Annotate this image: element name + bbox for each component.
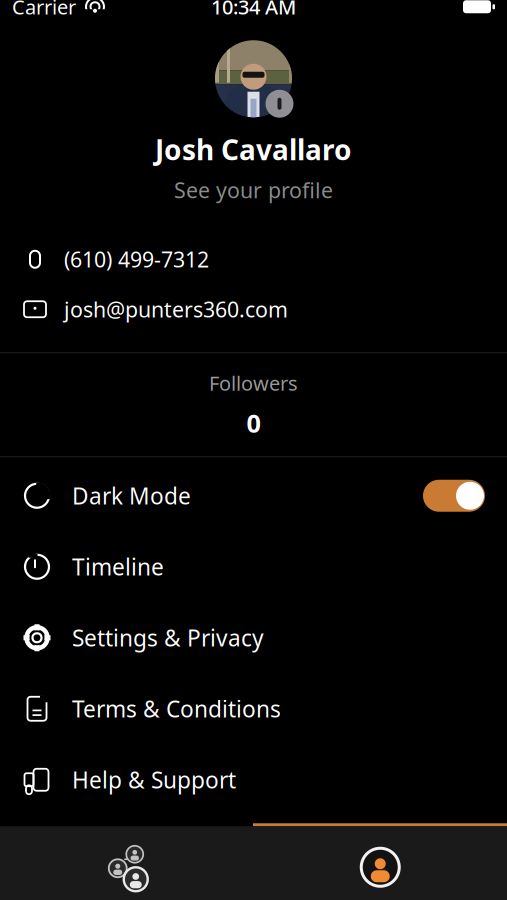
button[interactable]: Network [0,826,253,900]
staticText: Dark Mode [72,481,191,511]
staticText: Help & Support [72,765,236,795]
button[interactable]: Settings & Privacy [0,602,507,673]
button[interactable]: Followers [0,353,507,456]
staticText: 10:34 AM [211,0,296,20]
staticText: Settings & Privacy [72,623,264,653]
staticText: See your profile [174,176,333,204]
button[interactable]: Dark Mode [0,460,507,531]
button[interactable]: Terms & Conditions [0,673,507,744]
button[interactable]: Help & Support [0,744,507,815]
staticText: Timeline [72,552,164,582]
staticText: Terms & Conditions [72,694,281,724]
staticText: (610) 499-7312 [64,245,209,273]
staticText: Followers [209,370,298,396]
button[interactable]: Profile [253,826,507,900]
button[interactable]: Timeline [0,531,507,602]
button[interactable]: Call (610) 499-7312 [0,234,507,284]
button[interactable]: Josh Cavallaro [105,127,402,208]
staticText: josh@punters360.com [64,295,288,323]
button[interactable]: Edit profile photo [203,35,303,123]
staticText: 0 [246,406,260,440]
staticText: Josh Cavallaro [155,131,352,168]
button[interactable]: Email josh@punters360.com [0,284,507,334]
staticText: Carrier [12,0,76,20]
